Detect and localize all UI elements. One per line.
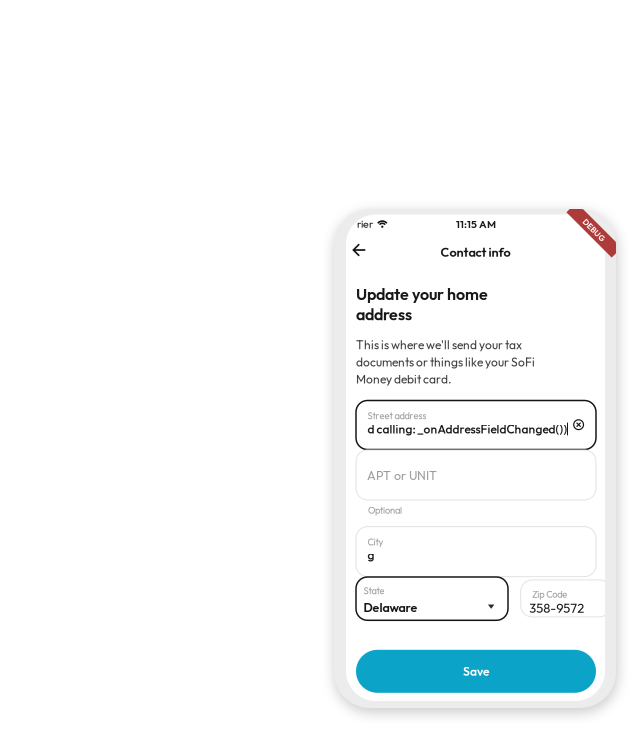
staticText: d calling: _onAddressFieldChanged()): [367, 421, 567, 437]
button[interactable]: State: [356, 577, 508, 620]
staticText: Contact info: [440, 244, 510, 260]
staticText: Delaware: [363, 599, 417, 615]
staticText: 358-9572: [529, 600, 584, 616]
staticText: Save: [463, 664, 489, 679]
button[interactable]: Save: [356, 650, 596, 693]
button[interactable]: Zip Code: [521, 580, 611, 617]
button[interactable]: Back: [347, 237, 377, 263]
staticText: Optional: [368, 504, 402, 516]
staticText: Street address: [367, 410, 426, 422]
staticText: DEBUG: [580, 225, 608, 235]
staticText: State: [363, 585, 384, 597]
button[interactable]: APT or UNIT: [356, 450, 596, 500]
staticText: Update your home address: [356, 284, 488, 324]
staticText: City: [367, 536, 383, 548]
staticText: 11:15 AM: [456, 217, 496, 231]
staticText: This is where we'll send your tax docume…: [356, 337, 535, 387]
staticText: Zip Code: [532, 588, 567, 600]
button[interactable]: City: [356, 527, 596, 577]
button[interactable]: Street address: [356, 400, 596, 449]
staticText: rier: [357, 217, 373, 230]
staticText: g: [367, 548, 374, 563]
staticText: APT or UNIT: [367, 468, 437, 483]
